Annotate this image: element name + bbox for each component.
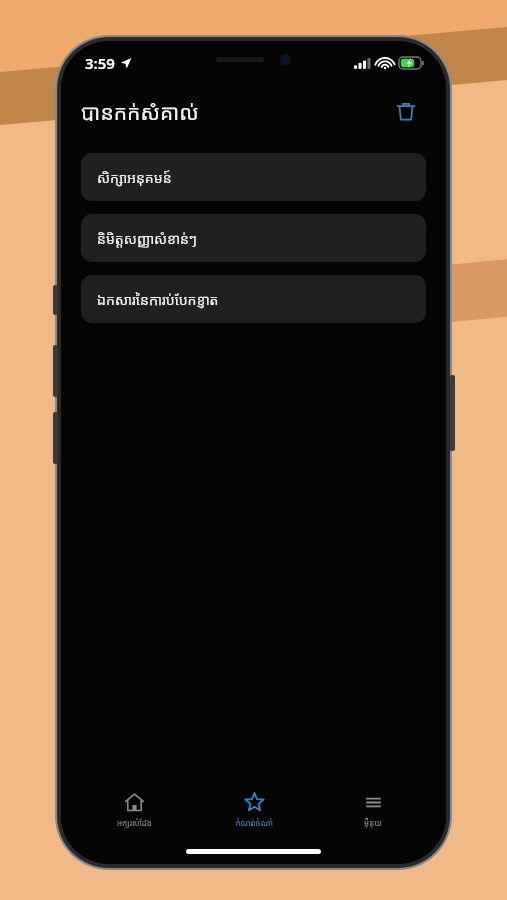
- staticText: បានកក់សំគាល់: [81, 98, 199, 127]
- staticText: និមិត្តសញ្ញាសំខាន់ៗ: [97, 229, 198, 248]
- button[interactable]: ឯកសារនៃការប់បែកខ្ញាត: [81, 275, 426, 323]
- button[interactable]: Delete all: [386, 92, 426, 132]
- staticText: សិក្សាអនុគមន៍: [97, 168, 172, 187]
- staticText: កំណត់ចំណាំ: [235, 817, 273, 828]
- button[interactable]: ម៉ឺនុយ: [318, 788, 428, 832]
- button[interactable]: សិក្សាអនុគមន៍: [81, 153, 426, 201]
- button[interactable]: និមិត្តសញ្ញាសំខាន់ៗ: [81, 214, 426, 262]
- staticText: ឯកសារនៃការប់បែកខ្ញាត: [97, 290, 219, 309]
- staticText: ម៉ឺនុយ: [364, 817, 382, 828]
- button[interactable]: អក្សរសំដែង: [79, 788, 189, 832]
- button[interactable]: កំណត់ចំណាំ: [199, 788, 309, 832]
- staticText: 3:59: [85, 53, 115, 73]
- staticText: អក្សរសំដែង: [117, 817, 152, 828]
